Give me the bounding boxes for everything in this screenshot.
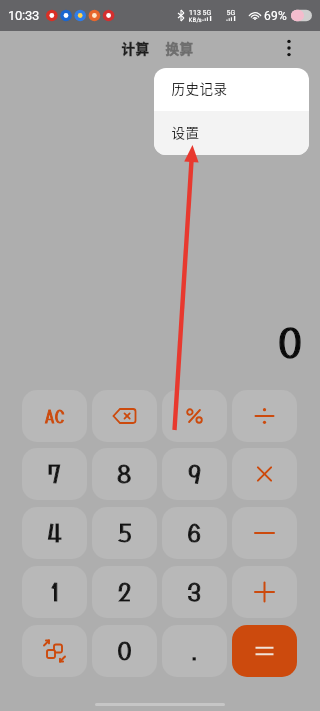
button[interactable]: Decimal point — [162, 625, 227, 677]
button[interactable]: 3 — [162, 566, 227, 618]
button[interactable] — [154, 68, 309, 111]
button[interactable] — [160, 31, 198, 65]
button[interactable]: Plus — [232, 566, 297, 618]
button[interactable]: 6 — [162, 507, 227, 559]
button[interactable]: 0 — [92, 625, 157, 677]
button[interactable]: Delete — [92, 390, 157, 442]
button[interactable]: All clear — [22, 390, 87, 442]
button[interactable]: 4 — [22, 507, 87, 559]
button[interactable]: Divide — [232, 390, 297, 442]
button[interactable]: Equals — [232, 625, 297, 677]
button[interactable]: Minus — [232, 507, 297, 559]
button[interactable]: 2 — [92, 566, 157, 618]
button[interactable]: Percent — [162, 390, 227, 442]
button[interactable]: 5 — [92, 507, 157, 559]
button[interactable]: 8 — [92, 448, 157, 500]
button[interactable] — [116, 31, 154, 65]
button[interactable] — [154, 111, 309, 155]
button[interactable]: 9 — [162, 448, 227, 500]
button[interactable]: Unit conversion — [22, 625, 87, 677]
button[interactable]: 7 — [22, 448, 87, 500]
button[interactable]: Multiply — [232, 448, 297, 500]
button[interactable]: More options — [271, 31, 307, 65]
button[interactable]: 1 — [22, 566, 87, 618]
